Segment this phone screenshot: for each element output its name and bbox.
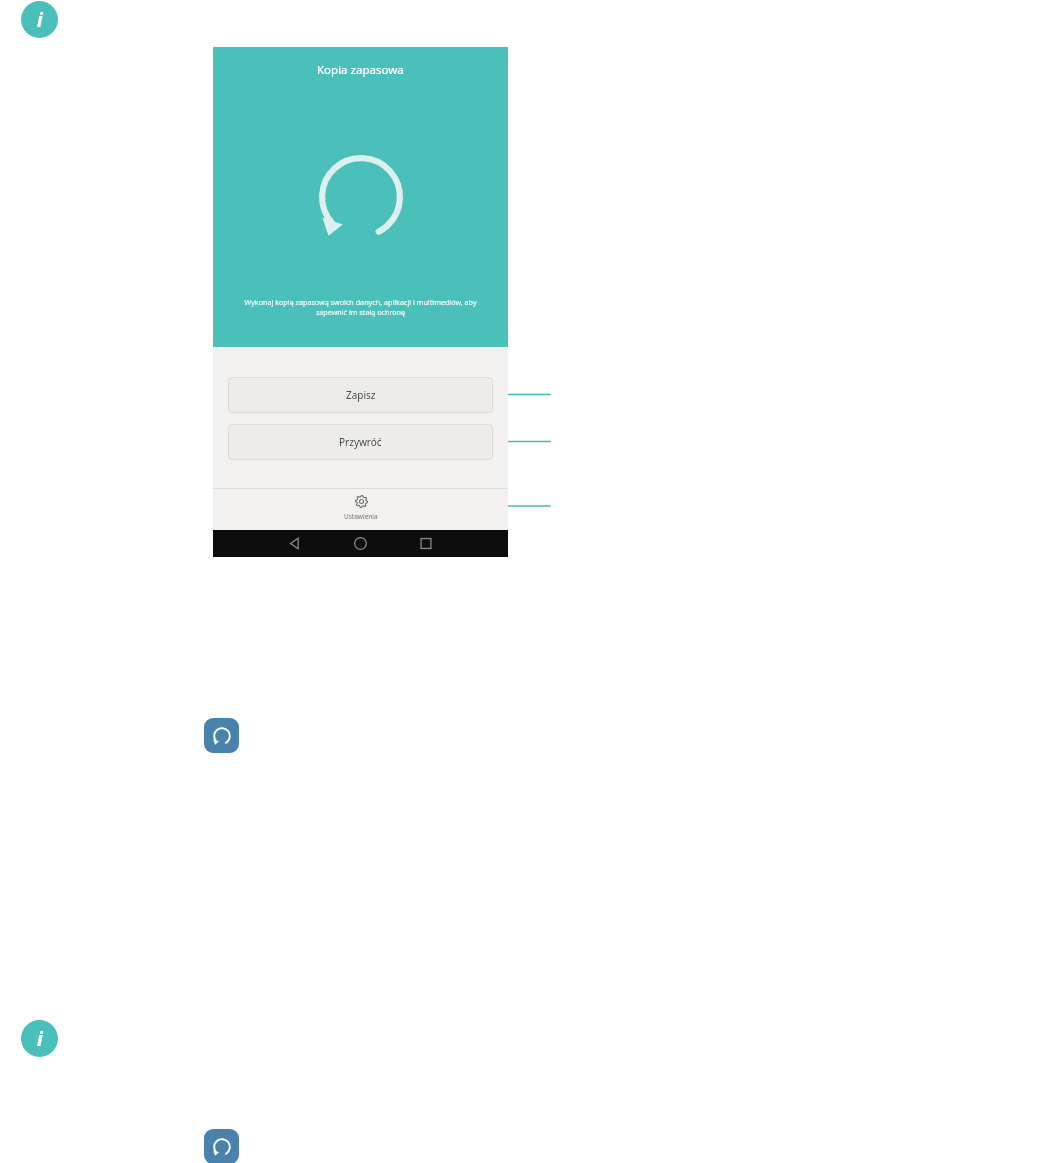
staticText: i <box>37 7 43 33</box>
staticText: Ustawienia <box>344 512 378 521</box>
button[interactable]: Information <box>21 1020 58 1057</box>
staticText: Wykonaj kopię zapasową swoich danych, ap… <box>241 297 480 317</box>
button[interactable]: Zapisz <box>228 377 493 413</box>
staticText: Przywróć <box>339 435 382 449</box>
staticText: Kopia zapasowa <box>317 62 404 78</box>
button[interactable]: Backup app <box>204 1129 239 1163</box>
button[interactable]: Information <box>21 1 58 38</box>
staticText: Zapisz <box>346 388 376 402</box>
staticText: i <box>37 1026 43 1052</box>
button[interactable]: Ustawienia <box>213 488 508 530</box>
button[interactable]: Przywróć <box>228 424 493 460</box>
button[interactable]: Backup app <box>204 718 239 753</box>
